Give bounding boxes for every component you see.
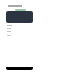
button[interactable] <box>15 9 26 11</box>
